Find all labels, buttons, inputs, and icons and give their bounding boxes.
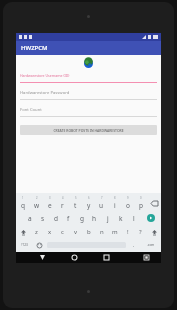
button[interactable]: f	[62, 211, 75, 225]
button[interactable]: x	[43, 225, 56, 239]
button[interactable]: v	[69, 225, 82, 239]
button[interactable]: 5	[69, 195, 82, 211]
button[interactable]: Shift	[16, 225, 30, 239]
staticText: k	[119, 214, 123, 223]
button[interactable]: 9	[121, 195, 134, 211]
staticText: i	[114, 201, 116, 210]
button[interactable]: 1	[16, 195, 30, 211]
button[interactable]: a	[23, 211, 36, 225]
staticText: m	[112, 228, 118, 236]
staticText: v	[74, 228, 78, 236]
staticText: ?	[139, 228, 142, 236]
staticText: .	[133, 242, 135, 249]
button[interactable]: Backspace	[147, 195, 161, 211]
button[interactable]: m	[108, 225, 121, 239]
button[interactable]: Enter	[140, 211, 161, 225]
staticText: b	[87, 228, 91, 236]
staticText: g	[80, 214, 84, 223]
staticText: p	[139, 201, 143, 210]
staticText: u	[99, 201, 104, 210]
staticText: n	[100, 228, 104, 236]
button[interactable]: Recent apps	[95, 252, 118, 263]
button[interactable]: g	[75, 211, 88, 225]
button[interactable]: 0	[134, 195, 147, 211]
button[interactable]: CREATE ROBOT POSTS IN HARDWARESTORE	[20, 125, 157, 135]
button[interactable]: Emoji	[32, 239, 46, 251]
staticText: f	[67, 214, 70, 223]
staticText: o	[126, 201, 130, 210]
staticText: q	[21, 201, 25, 210]
staticText: 6	[88, 196, 90, 200]
button[interactable]: Screenshot	[136, 252, 157, 263]
button[interactable]: .com	[141, 239, 161, 251]
button[interactable]: k	[114, 211, 127, 225]
staticText: h	[92, 214, 97, 223]
button[interactable]: Shift	[147, 225, 161, 239]
staticText: z	[35, 228, 38, 236]
staticText: 7	[101, 196, 103, 200]
staticText: 1	[22, 196, 24, 200]
staticText: w	[34, 201, 40, 210]
staticText: Font Count	[20, 107, 42, 113]
button[interactable]: l	[127, 211, 140, 225]
button[interactable]: Font Count	[16, 107, 161, 117]
staticText: c	[61, 228, 64, 236]
staticText: CREATE ROBOT POSTS IN HARDWARESTORE	[53, 128, 124, 133]
button[interactable]: .	[127, 239, 141, 251]
button[interactable]: 8	[108, 195, 121, 211]
button[interactable]: !	[121, 225, 134, 239]
button[interactable]: 7	[95, 195, 108, 211]
button[interactable]: 6	[82, 195, 95, 211]
button[interactable]: d	[49, 211, 62, 225]
staticText: e	[48, 201, 52, 210]
staticText: Hardwarestore Username (ID)	[20, 73, 70, 78]
staticText: ?123	[21, 243, 28, 247]
staticText: d	[54, 214, 58, 223]
button[interactable]: 3	[43, 195, 56, 211]
staticText: 5	[75, 196, 77, 200]
button[interactable]: Home	[63, 252, 86, 263]
staticText: j	[107, 214, 109, 223]
button[interactable]: b	[82, 225, 95, 239]
staticText: x	[48, 228, 52, 236]
staticText: 8	[114, 196, 116, 200]
staticText: s	[41, 214, 45, 223]
staticText: !	[127, 228, 129, 236]
staticText: .com	[147, 243, 155, 247]
staticText: 3	[49, 196, 51, 200]
button[interactable]: ?123	[16, 239, 32, 251]
button[interactable]: j	[101, 211, 114, 225]
button[interactable]: 2	[30, 195, 43, 211]
staticText: 2	[36, 196, 38, 200]
staticText: 0	[140, 196, 142, 200]
staticText: Hardwarestore Password	[20, 90, 70, 96]
staticText: y	[87, 201, 91, 210]
button[interactable]: s	[36, 211, 49, 225]
button[interactable]: 4	[56, 195, 69, 211]
staticText: r	[61, 201, 64, 210]
staticText: 9	[127, 196, 129, 200]
staticText: t	[74, 201, 77, 210]
staticText: 4	[62, 196, 64, 200]
button[interactable]: n	[95, 225, 108, 239]
button[interactable]: Back	[31, 252, 54, 263]
button[interactable]: h	[88, 211, 101, 225]
staticText: l	[133, 214, 135, 223]
button[interactable]: Hardwarestore Password	[16, 90, 161, 100]
button[interactable]: ?	[134, 225, 147, 239]
button[interactable]: c	[56, 225, 69, 239]
button[interactable]: Hardwarestore Username (ID)	[16, 73, 161, 83]
staticText: a	[28, 214, 32, 223]
staticText: HWZPCM	[21, 44, 48, 52]
button[interactable]: z	[30, 225, 43, 239]
